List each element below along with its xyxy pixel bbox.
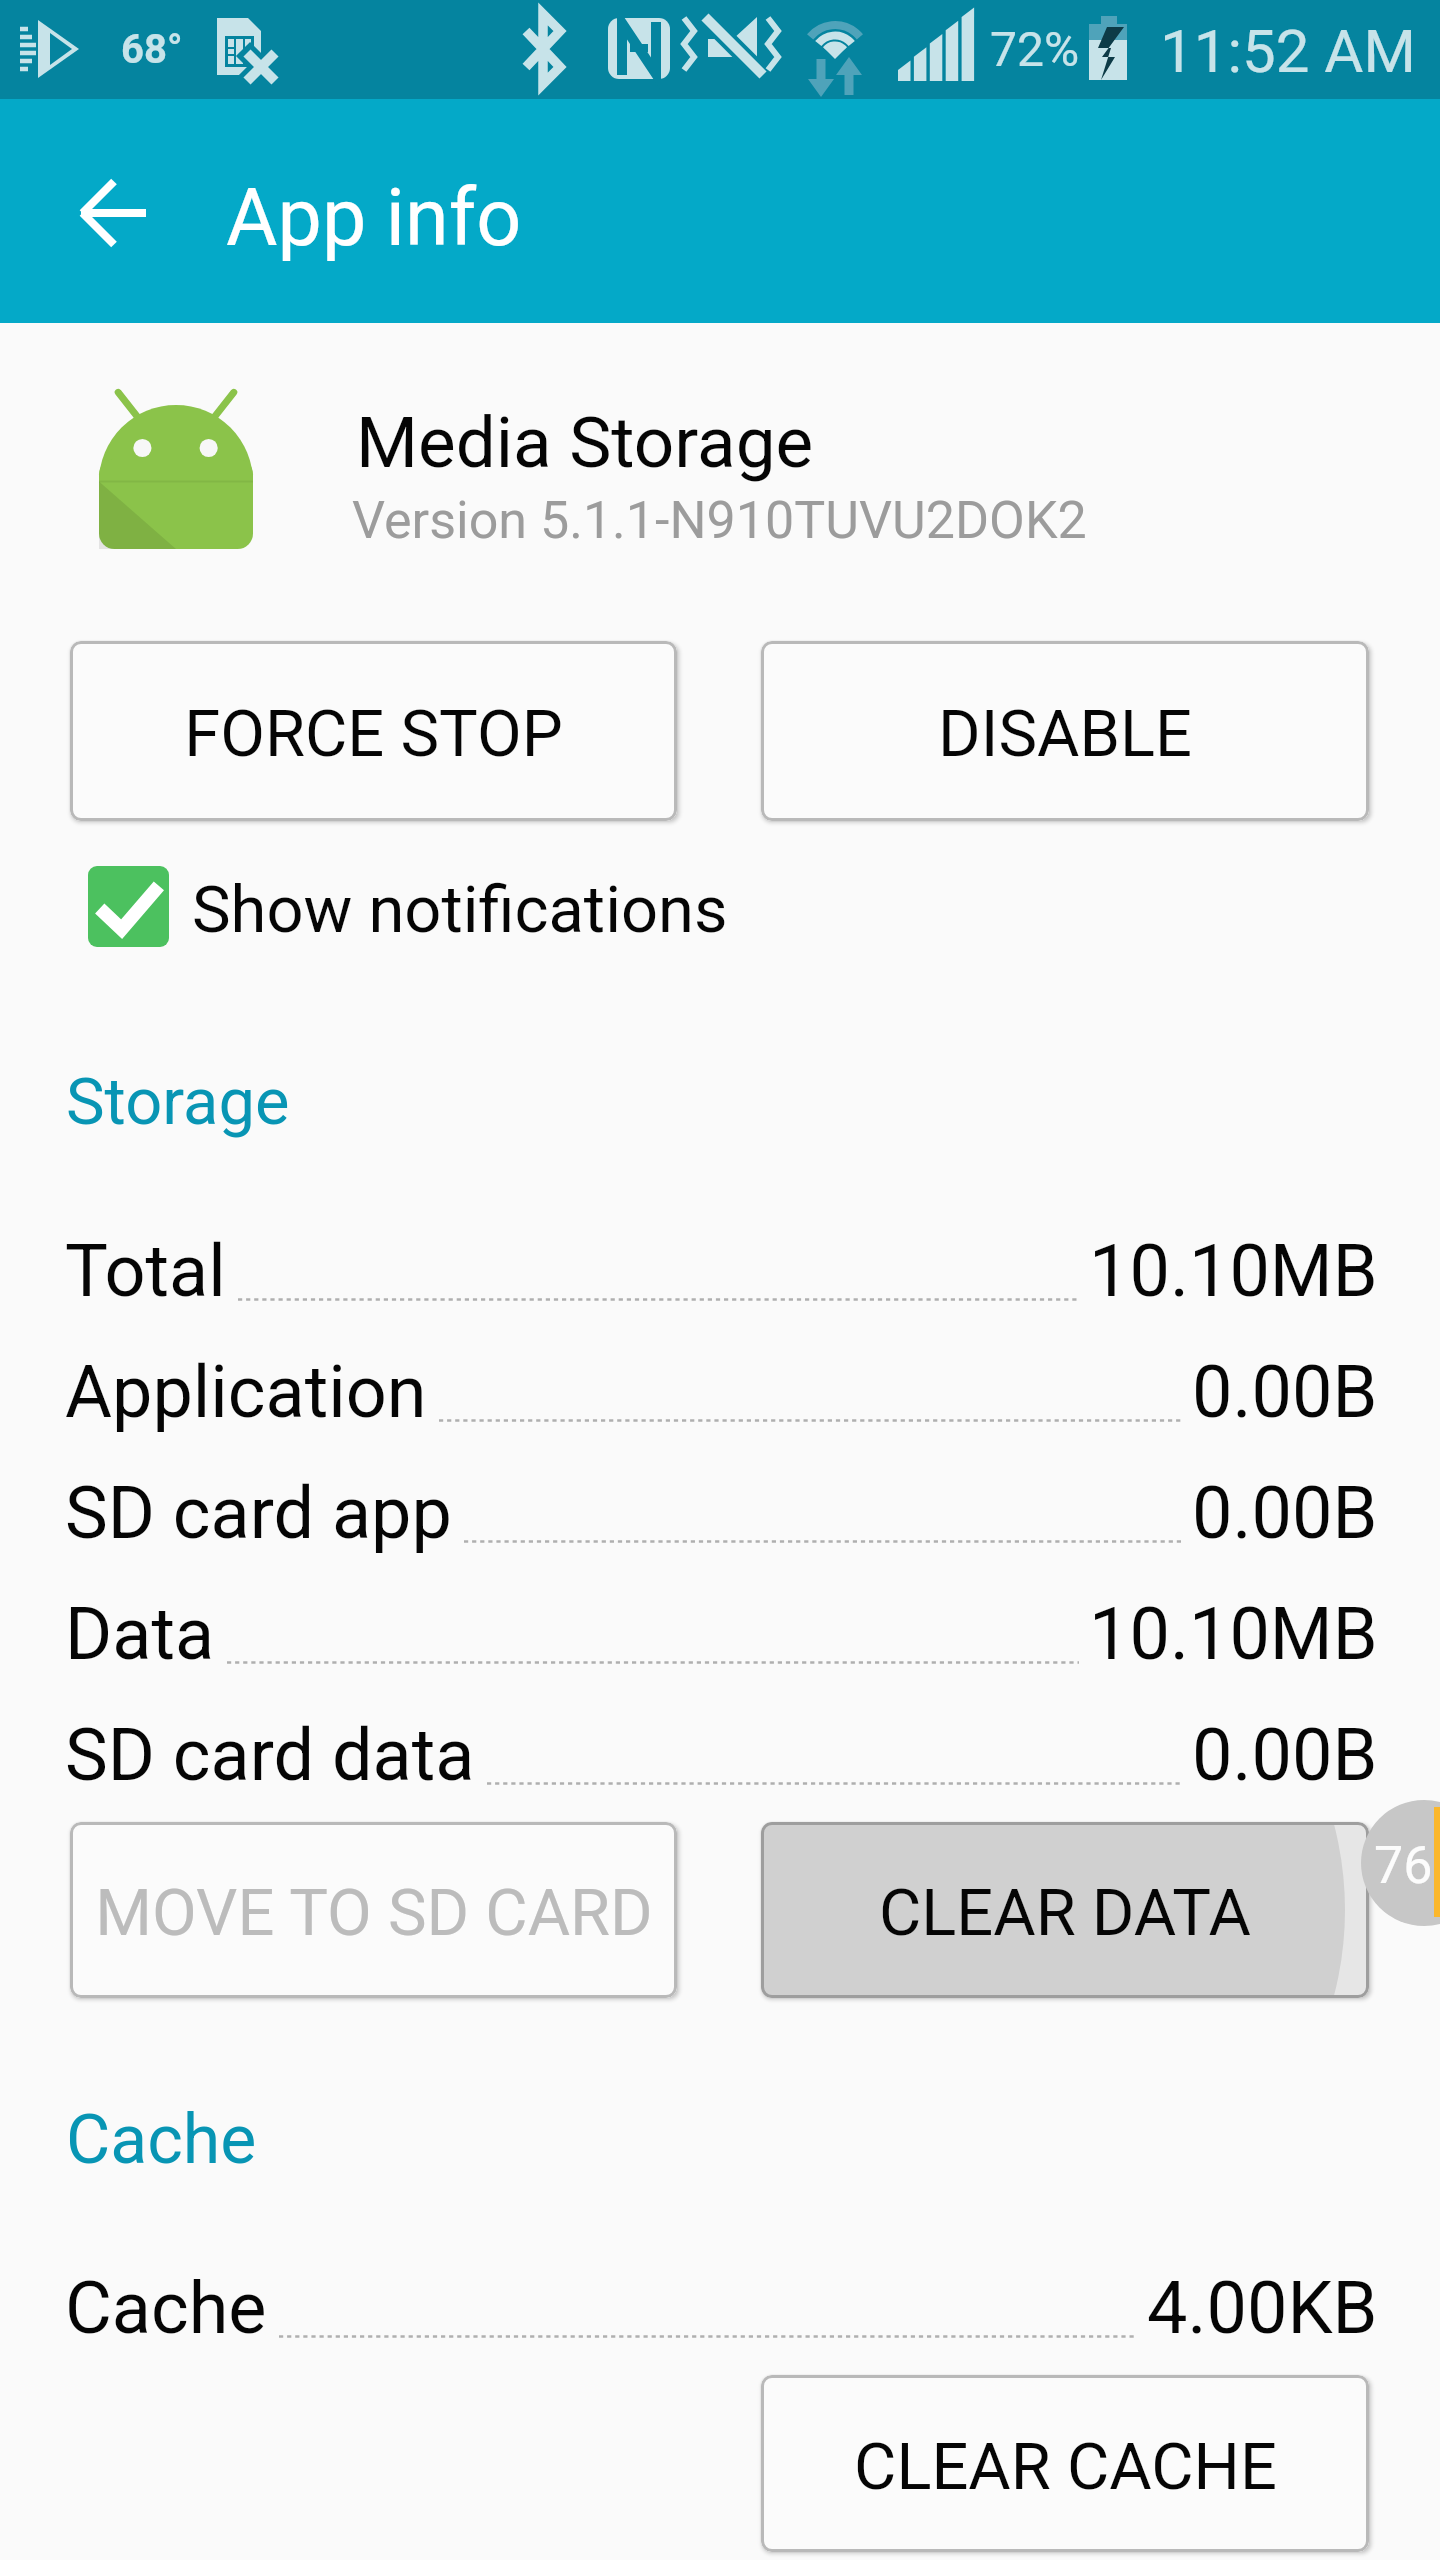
staticText: 72% bbox=[990, 21, 1080, 77]
staticText: Cache bbox=[66, 2100, 257, 2180]
staticText: 76 bbox=[1374, 1835, 1433, 1896]
staticText: MOVE TO SD CARD bbox=[95, 1875, 653, 1951]
staticText: 0.00B bbox=[1192, 1350, 1378, 1434]
staticText: Media Storage bbox=[356, 401, 814, 484]
staticText: DISABLE bbox=[938, 696, 1192, 772]
staticText: 4.00KB bbox=[1147, 2266, 1378, 2350]
staticText: CLEAR CACHE bbox=[854, 2429, 1277, 2505]
button[interactable]: CLEAR CACHE bbox=[761, 2375, 1369, 2552]
staticText: SD card app bbox=[65, 1471, 452, 1555]
staticText: Data bbox=[65, 1592, 215, 1676]
staticText: Total bbox=[65, 1229, 226, 1313]
button[interactable]: Show notifications bbox=[80, 858, 740, 956]
staticText: FORCE STOP bbox=[184, 696, 563, 772]
button[interactable]: DISABLE bbox=[761, 641, 1369, 821]
button[interactable]: FORCE STOP bbox=[70, 641, 677, 821]
staticText: 10.10MB bbox=[1089, 1229, 1378, 1313]
staticText: Storage bbox=[66, 1064, 290, 1140]
staticText: Application bbox=[65, 1350, 427, 1434]
staticText: 0.00B bbox=[1192, 1471, 1378, 1555]
staticText: Show notifications bbox=[192, 872, 728, 948]
staticText: Cache bbox=[65, 2266, 267, 2350]
staticText: App info bbox=[226, 172, 522, 265]
staticText: SD card data bbox=[65, 1713, 475, 1797]
button[interactable]: Navigate up bbox=[42, 168, 188, 258]
staticText: 11:52 AM bbox=[1160, 16, 1416, 86]
button[interactable]: MOVE TO SD CARD bbox=[70, 1822, 677, 1998]
staticText: 0.00B bbox=[1192, 1713, 1378, 1797]
button[interactable]: CLEAR DATA bbox=[761, 1822, 1369, 1998]
staticText: Version 5.1.1-N910TUVU2DOK2 bbox=[352, 490, 1087, 551]
staticText: CLEAR DATA bbox=[879, 1875, 1251, 1951]
staticText: 10.10MB bbox=[1089, 1592, 1378, 1676]
staticText: 68° bbox=[121, 26, 183, 73]
